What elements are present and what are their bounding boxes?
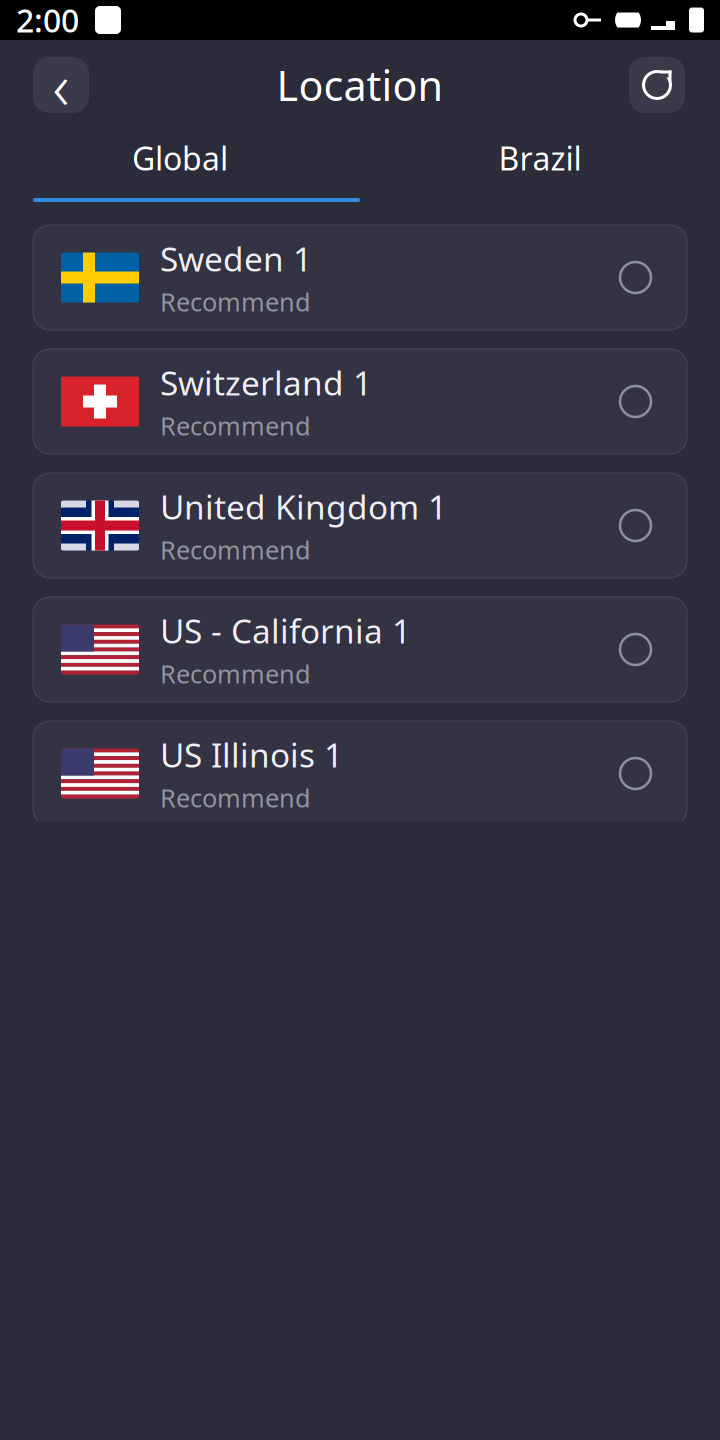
staticText: Recommend (160, 409, 311, 442)
staticText: US - California 1 (160, 608, 411, 653)
staticText: United Kingdom 1 (160, 484, 447, 529)
staticText: Sweden 1 (160, 236, 312, 281)
staticText: Location (276, 58, 443, 112)
staticText: US Illinois 1 (160, 732, 343, 777)
staticText: Recommend (160, 657, 311, 690)
staticText: ‹ (52, 42, 69, 127)
button[interactable]: US Illinois 1 (33, 721, 687, 826)
staticText: Switzerland 1 (160, 360, 372, 405)
staticText: 2:00 (16, 0, 79, 41)
button[interactable]: Brazil (360, 130, 720, 186)
button[interactable]: US - California 1 (33, 597, 687, 702)
staticText: Brazil (498, 137, 581, 179)
button[interactable]: Back (33, 57, 89, 113)
button[interactable]: Global (0, 130, 360, 186)
staticText: Recommend (160, 781, 311, 814)
staticText: Recommend (160, 285, 311, 318)
staticText: Global (132, 137, 228, 179)
button[interactable]: Refresh (629, 57, 685, 113)
button[interactable]: Sweden 1 (33, 225, 687, 330)
button[interactable]: Switzerland 1 (33, 349, 687, 454)
staticText: Recommend (160, 533, 311, 566)
button[interactable]: United Kingdom 1 (33, 473, 687, 578)
